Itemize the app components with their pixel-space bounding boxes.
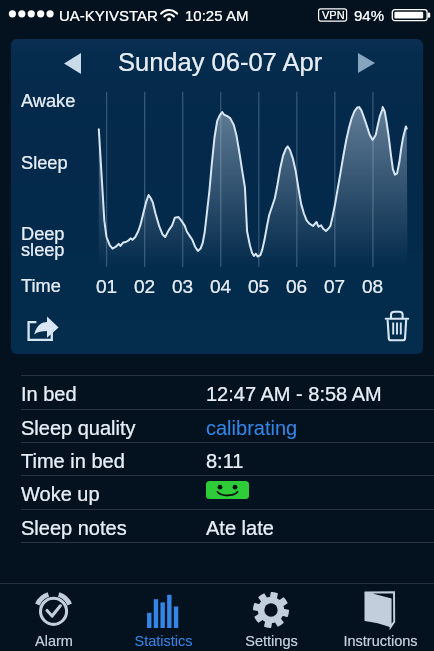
staticText: 02: [134, 276, 156, 297]
staticText: 04: [210, 276, 232, 297]
staticText: sleep: [21, 240, 65, 260]
staticText: Sleep quality: [21, 417, 136, 439]
staticText: 01: [96, 276, 118, 297]
button[interactable]: Previous day: [56, 45, 90, 82]
staticText: UA-KYIVSTAR: [59, 7, 158, 24]
button[interactable]: [0, 375, 434, 408]
staticText: Instructions: [343, 633, 418, 649]
staticText: Sleep notes: [21, 517, 127, 539]
button[interactable]: Next day: [350, 45, 384, 81]
staticText: Statistics: [134, 633, 193, 649]
button[interactable]: [0, 583, 109, 651]
staticText: Settings: [245, 633, 298, 649]
button[interactable]: [326, 583, 434, 651]
staticText: VPN: [322, 9, 345, 21]
staticText: 10:25 AM: [185, 7, 249, 24]
staticText: Sleep: [21, 153, 68, 173]
staticText: 12:47 AM - 8:58 AM: [206, 383, 382, 405]
staticText: Ate late: [206, 517, 274, 539]
staticText: calibrating: [206, 417, 298, 439]
staticText: Deep: [21, 224, 65, 244]
button[interactable]: Delete: [375, 305, 419, 347]
staticText: Time: [21, 276, 61, 296]
staticText: 08: [362, 276, 384, 297]
staticText: Sunday 06-07 Apr: [118, 48, 323, 76]
staticText: Time in bed: [21, 450, 125, 472]
staticText: In bed: [21, 383, 77, 405]
button[interactable]: [109, 583, 218, 651]
staticText: 05: [248, 276, 270, 297]
button[interactable]: [217, 583, 326, 651]
staticText: 06: [286, 276, 308, 297]
button[interactable]: Share: [17, 308, 69, 352]
button[interactable]: [0, 409, 434, 442]
staticText: 07: [324, 276, 346, 297]
staticText: 03: [172, 276, 194, 297]
staticText: 94%: [354, 7, 385, 24]
staticText: Awake: [21, 91, 76, 111]
staticText: Alarm: [35, 633, 73, 649]
button[interactable]: [0, 475, 434, 508]
button[interactable]: [0, 442, 434, 475]
button[interactable]: [0, 509, 434, 542]
staticText: Woke up: [21, 483, 100, 505]
staticText: 8:11: [206, 450, 244, 472]
